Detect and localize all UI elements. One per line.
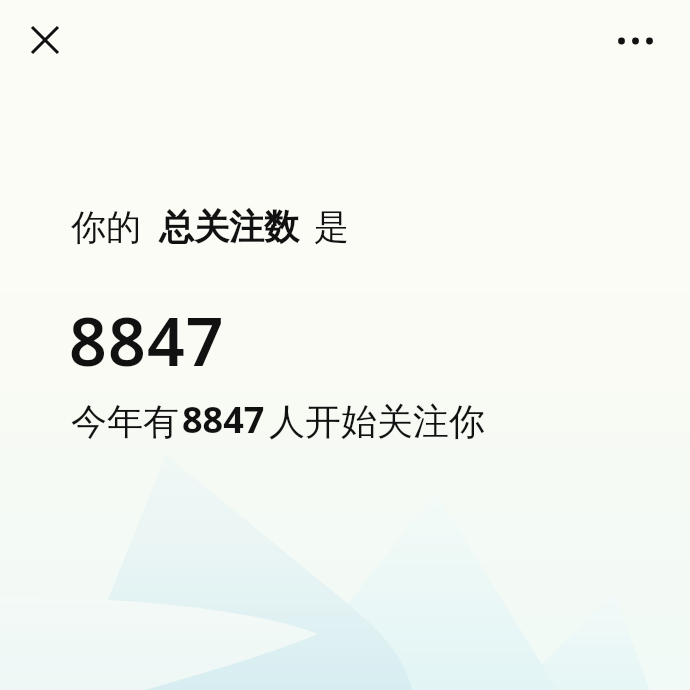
- staticText: 你的: [71, 205, 141, 249]
- staticText: 8847: [69, 295, 225, 385]
- button[interactable]: Close: [17, 12, 73, 68]
- staticText: 8847: [182, 395, 265, 444]
- staticText: 今年有: [71, 399, 179, 444]
- staticText: 是: [314, 205, 349, 249]
- staticText: 总关注数: [159, 205, 299, 249]
- staticText: 人开始关注你: [269, 399, 485, 444]
- button[interactable]: More options: [607, 13, 663, 69]
